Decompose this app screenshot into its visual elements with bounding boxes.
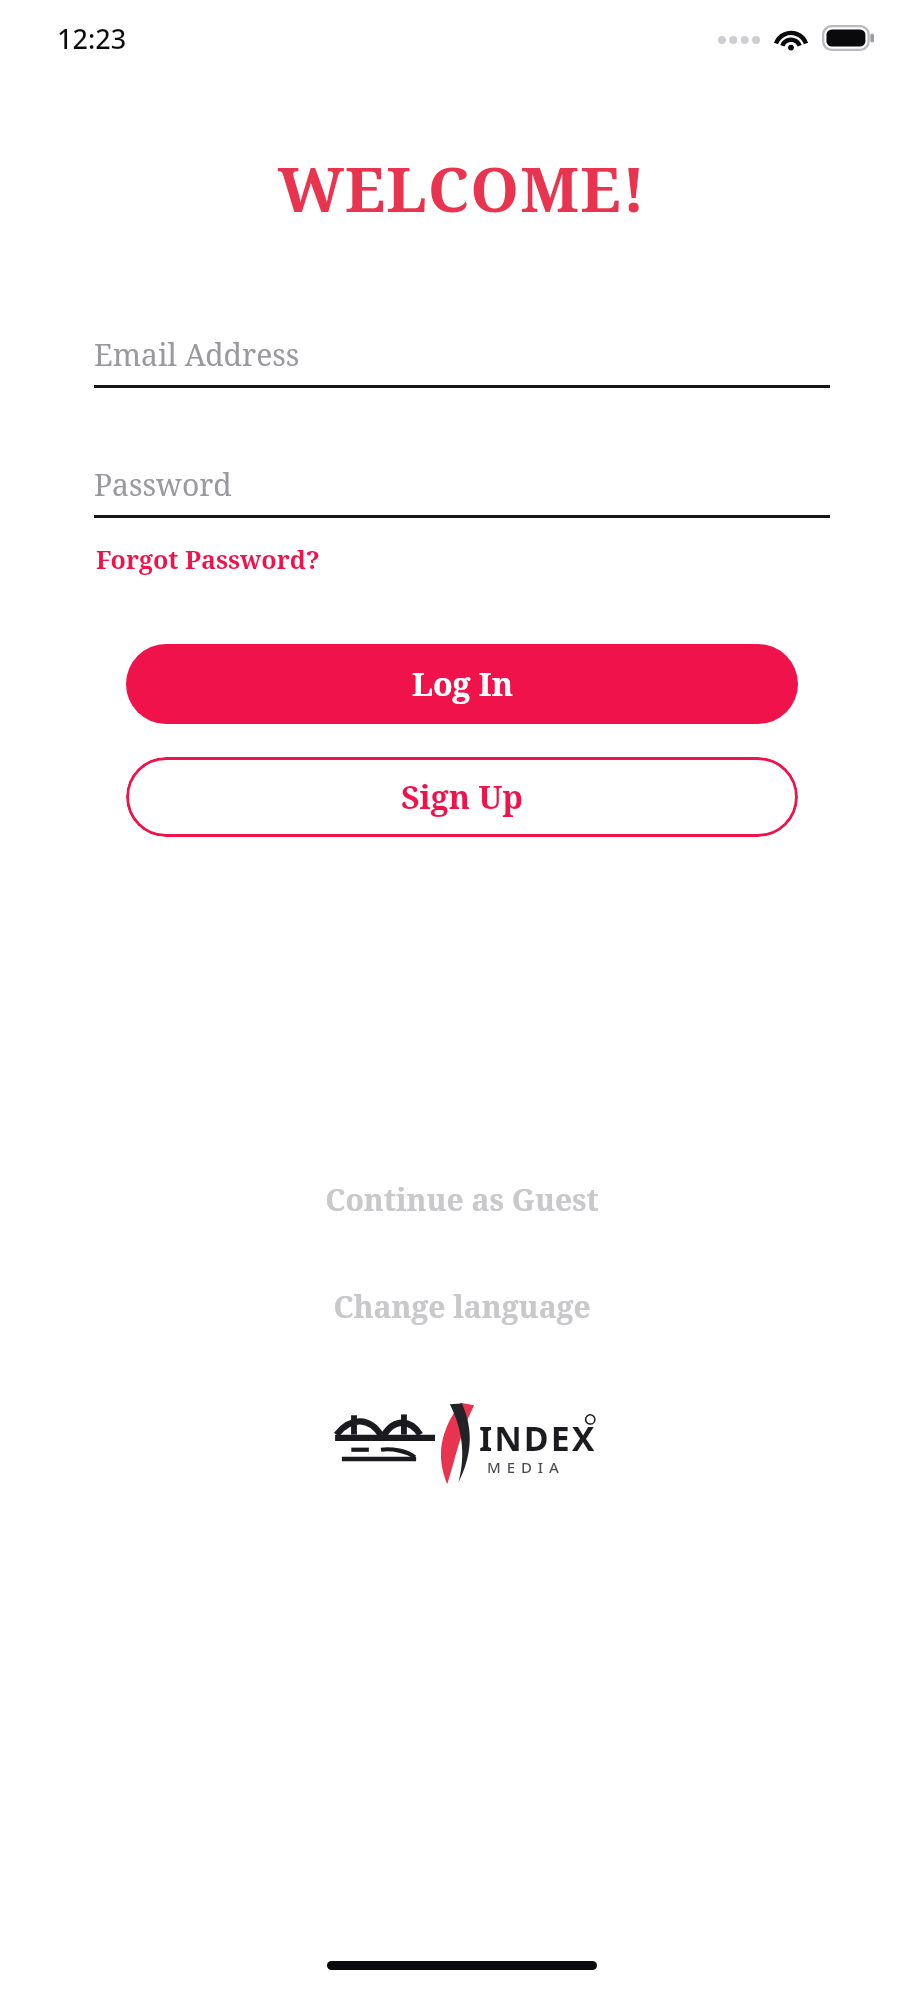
staticText: 12:23 — [57, 20, 127, 57]
other: Index Media logo — [327, 1401, 597, 1485]
staticText: Forgot Password? — [96, 542, 320, 576]
staticText: Log In — [412, 662, 513, 706]
button[interactable]: Sign Up — [126, 757, 798, 837]
staticText: Sign Up — [401, 775, 523, 819]
button[interactable]: Email Address — [94, 334, 830, 388]
staticText: INDEX — [479, 1415, 597, 1461]
staticText: M E D I A — [487, 1457, 560, 1477]
button[interactable]: Log In — [126, 644, 798, 724]
button[interactable]: Password — [94, 464, 830, 518]
staticText: Change language — [333, 1286, 591, 1327]
staticText: WELCOME! — [0, 146, 924, 230]
staticText: Continue as Guest — [325, 1179, 599, 1220]
staticText: Email Address — [94, 334, 300, 375]
staticText: Password — [94, 464, 232, 505]
button[interactable]: Forgot Password? — [94, 536, 322, 582]
button[interactable]: Continue as Guest — [0, 1167, 924, 1232]
button[interactable]: Change language — [0, 1274, 924, 1339]
